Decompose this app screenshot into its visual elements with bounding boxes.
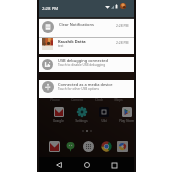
- staticText: Google: [53, 119, 64, 123]
- staticText: Touch for other USB options: [58, 87, 99, 91]
- button[interactable]: Apps: [83, 141, 94, 152]
- staticText: Settings: [75, 119, 88, 123]
- staticText: Clear Notifications: [59, 22, 94, 27]
- button[interactable]: Chrome: [101, 141, 112, 152]
- staticText: Maps: [114, 98, 123, 102]
- button[interactable]: Camera: [117, 141, 128, 152]
- button[interactable]: [39, 80, 134, 98]
- button[interactable]: [39, 19, 134, 37]
- button[interactable]: Play Store: [117, 107, 136, 123]
- staticText: 2:28 PM: [42, 5, 59, 11]
- button[interactable]: Home: [80, 158, 94, 172]
- button[interactable]: Hangouts: [65, 141, 76, 152]
- button[interactable]: [39, 57, 134, 72]
- staticText: Camera: [71, 98, 83, 102]
- staticText: Connected as a media device: [58, 82, 113, 87]
- staticText: Ubi: [101, 119, 107, 123]
- staticText: Kaushik Datta: [58, 39, 86, 44]
- button[interactable]: [39, 37, 134, 53]
- staticText: 2:28 PM: [116, 23, 129, 27]
- button[interactable]: Back: [52, 158, 66, 172]
- staticText: 2:28 PM: [116, 40, 129, 44]
- button[interactable]: Ubi: [94, 107, 113, 123]
- staticText: USB debugging connected: [58, 58, 108, 63]
- staticText: Clock: [95, 98, 103, 102]
- staticText: test: [58, 44, 64, 48]
- button[interactable]: Settings: [72, 107, 91, 123]
- staticText: Touch to disable USB debugging: [58, 63, 106, 67]
- staticText: Phone: [50, 98, 60, 102]
- button[interactable]: Gmail: [49, 141, 60, 152]
- button[interactable]: Recents: [107, 158, 121, 172]
- button[interactable]: Google: [49, 107, 68, 123]
- staticText: Play Store: [119, 119, 134, 123]
